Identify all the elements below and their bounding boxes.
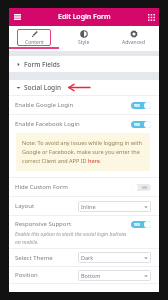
staticText: Select Theme <box>15 254 53 262</box>
button[interactable]: Hide Custom Form <box>9 178 159 196</box>
button[interactable]: Content <box>17 29 51 46</box>
button[interactable]: Responsive Support <box>9 216 159 231</box>
button[interactable]: Inline <box>78 201 151 212</box>
staticText: Hide Custom Form <box>15 183 68 191</box>
button[interactable]: Form Fields <box>9 56 159 72</box>
staticText: YES <box>134 103 140 108</box>
staticText: Responsive Support <box>15 220 72 228</box>
staticText: Form Fields <box>24 60 60 69</box>
staticText: Style <box>78 39 90 46</box>
button[interactable]: Advanced <box>117 29 151 46</box>
staticText: Content <box>25 39 44 46</box>
staticText: Note: To avoid any issues while logging … <box>22 139 145 165</box>
button[interactable]: Menu <box>9 8 25 26</box>
staticText: Position <box>15 271 38 279</box>
staticText: Layout <box>15 202 35 210</box>
staticText: Dark <box>81 254 94 261</box>
staticText: NO <box>142 185 148 190</box>
button[interactable]: Social Login <box>9 80 159 95</box>
staticText: Social Login <box>24 83 61 92</box>
staticText: Advanced <box>122 39 146 46</box>
button[interactable]: Style <box>67 29 101 46</box>
staticText: Edit Login Form <box>58 12 111 22</box>
button[interactable]: Apps <box>143 8 159 26</box>
button[interactable]: Dark <box>78 252 151 263</box>
staticText: Enable this option to stack the social l… <box>15 231 129 245</box>
button[interactable]: Bottom <box>78 270 151 281</box>
staticText: Enable Facebook Login <box>15 120 80 128</box>
button[interactable]: Enable Google Login <box>9 96 159 114</box>
button[interactable]: Enable Facebook Login <box>9 115 159 133</box>
staticText: YES <box>134 122 140 127</box>
staticText: Bottom <box>81 272 101 279</box>
staticText: YES <box>134 222 140 227</box>
staticText: Inline <box>81 203 96 210</box>
staticText: Enable Google Login <box>15 101 74 109</box>
